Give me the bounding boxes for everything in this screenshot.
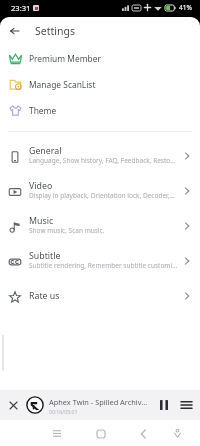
staticText: Aphex Twin - Spilled Archiv... — [49, 397, 148, 407]
button[interactable]: General — [0, 139, 200, 174]
button[interactable]: Subtitle — [0, 244, 200, 279]
button[interactable]: Playlist — [177, 396, 195, 414]
staticText: 41% — [179, 3, 193, 12]
staticText: Theme — [29, 105, 57, 116]
staticText: Manage ScanList — [29, 79, 96, 90]
staticText: 23:31 — [11, 3, 31, 13]
button[interactable]: Back — [133, 423, 154, 444]
staticText: Premium Member — [29, 53, 101, 64]
staticText: Show music, Scan music. — [29, 226, 105, 235]
button[interactable]: Manage ScanList — [0, 71, 200, 97]
staticText: General — [29, 145, 62, 157]
button[interactable]: Close — [4, 396, 22, 414]
button[interactable]: Pause — [155, 396, 173, 414]
staticText: Subtitle rendering, Remember subtitle cu… — [29, 261, 178, 270]
button[interactable]: Home — [90, 423, 111, 444]
button[interactable]: Menu — [46, 423, 67, 444]
staticText: Rate us — [29, 290, 60, 302]
button[interactable]: Back — [4, 21, 24, 41]
staticText: 00:16/05:01 — [49, 408, 78, 415]
staticText: Music — [29, 215, 54, 227]
button[interactable]: Premium Member — [0, 45, 200, 71]
staticText: Settings — [35, 24, 75, 38]
button[interactable]: Video — [0, 174, 200, 209]
button[interactable]: Rate us — [0, 279, 200, 314]
staticText: Subtitle — [29, 250, 61, 262]
staticText: Display in playback, Orientation lock, D… — [29, 191, 175, 200]
button[interactable]: Hide keyboard — [167, 423, 188, 444]
staticText: Language, Show history, FAQ, Feedback, R… — [29, 156, 176, 165]
staticText: Video — [29, 180, 53, 192]
button[interactable]: Theme — [0, 97, 200, 123]
button[interactable]: Music — [0, 209, 200, 244]
